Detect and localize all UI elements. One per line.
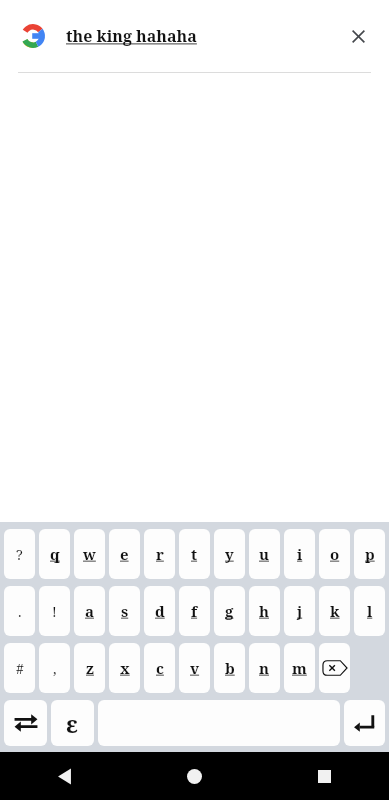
staticText: n — [259, 658, 270, 678]
staticText: . — [18, 602, 22, 621]
button[interactable]: t — [179, 529, 210, 579]
staticText: s — [121, 601, 129, 621]
staticText: v — [190, 658, 200, 678]
staticText: p — [365, 544, 375, 564]
button[interactable]: j — [284, 586, 315, 636]
staticText: b — [225, 658, 235, 678]
button[interactable]: y — [214, 529, 245, 579]
button[interactable]: Clear search — [341, 19, 375, 53]
button[interactable]: ! — [39, 586, 70, 636]
button[interactable]: z — [74, 643, 105, 693]
button[interactable]: g — [214, 586, 245, 636]
staticText: l — [367, 601, 373, 621]
button[interactable]: u — [249, 529, 280, 579]
staticText: c — [156, 658, 164, 678]
button[interactable]: ɛ — [51, 700, 94, 746]
staticText: ɛ — [66, 708, 79, 739]
button[interactable]: k — [319, 586, 350, 636]
button[interactable]: Recent apps — [259, 752, 389, 800]
button[interactable]: h — [249, 586, 280, 636]
button[interactable]: v — [179, 643, 210, 693]
staticText: the king hahaha — [66, 25, 341, 47]
staticText: h — [259, 601, 270, 621]
staticText: ? — [16, 545, 23, 564]
staticText: i — [297, 544, 303, 564]
staticText: g — [225, 601, 234, 621]
button[interactable]: Google — [18, 21, 48, 51]
button[interactable]: c — [144, 643, 175, 693]
button[interactable]: x — [109, 643, 140, 693]
staticText: a — [85, 601, 95, 621]
button[interactable]: Home — [129, 752, 259, 800]
button[interactable]: w — [74, 529, 105, 579]
staticText: , — [53, 659, 57, 678]
button[interactable]: # — [4, 643, 35, 693]
staticText: y — [225, 544, 234, 564]
button[interactable]: l — [354, 586, 385, 636]
staticText: m — [292, 658, 307, 678]
button[interactable]: , — [39, 643, 70, 693]
staticText: u — [259, 544, 270, 564]
staticText: r — [156, 544, 164, 564]
staticText: j — [297, 601, 303, 621]
button[interactable]: e — [109, 529, 140, 579]
button[interactable]: ? — [4, 529, 35, 579]
staticText: x — [120, 658, 130, 678]
button[interactable]: o — [319, 529, 350, 579]
button[interactable]: q — [39, 529, 70, 579]
staticText: f — [191, 601, 198, 621]
button[interactable]: Backspace — [319, 643, 350, 693]
button[interactable]: b — [214, 643, 245, 693]
button[interactable]: Back — [0, 752, 129, 800]
button[interactable]: Enter — [344, 700, 385, 746]
staticText: ! — [52, 602, 57, 621]
button[interactable]: p — [354, 529, 385, 579]
staticText: o — [330, 544, 340, 564]
staticText: # — [16, 659, 24, 678]
button[interactable]: f — [179, 586, 210, 636]
button[interactable]: i — [284, 529, 315, 579]
staticText: k — [330, 601, 340, 621]
button[interactable]: s — [109, 586, 140, 636]
staticText: e — [120, 544, 129, 564]
button[interactable]: Switch keyboard — [4, 700, 47, 746]
button[interactable]: r — [144, 529, 175, 579]
staticText: z — [86, 658, 94, 678]
button[interactable]: d — [144, 586, 175, 636]
staticText: q — [50, 544, 60, 564]
staticText: d — [155, 601, 165, 621]
button[interactable]: n — [249, 643, 280, 693]
staticText: t — [191, 544, 198, 564]
button[interactable]: a — [74, 586, 105, 636]
button[interactable]: m — [284, 643, 315, 693]
button[interactable]: . — [4, 586, 35, 636]
staticText: w — [83, 544, 96, 564]
